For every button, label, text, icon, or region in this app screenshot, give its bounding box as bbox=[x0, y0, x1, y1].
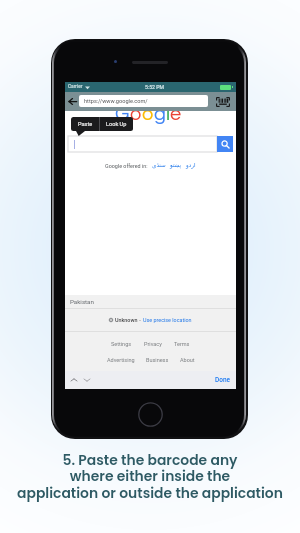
button[interactable]: Business bbox=[146, 357, 169, 363]
button[interactable]: Look Up bbox=[100, 117, 133, 131]
staticText: Look Up bbox=[106, 121, 127, 128]
staticText: g bbox=[154, 104, 166, 125]
staticText: o bbox=[130, 104, 142, 125]
button[interactable]: Home bbox=[138, 402, 163, 427]
button[interactable]: Search bbox=[217, 136, 233, 152]
staticText: https://www.google.com/ bbox=[84, 98, 148, 105]
staticText: G bbox=[115, 104, 130, 125]
staticText: Carrier bbox=[68, 84, 83, 90]
button[interactable]: About bbox=[180, 357, 195, 363]
staticText: Google offered in: bbox=[105, 163, 148, 169]
button[interactable]: Scan barcode bbox=[216, 97, 230, 107]
button[interactable]: Settings bbox=[111, 341, 132, 347]
staticText: o bbox=[142, 104, 154, 125]
staticText: l bbox=[166, 104, 170, 125]
button[interactable]: Paste bbox=[71, 117, 99, 131]
button[interactable]: Use precise location bbox=[143, 317, 192, 323]
button[interactable]: Privacy bbox=[144, 341, 162, 347]
button[interactable]: اردو bbox=[186, 162, 196, 169]
button[interactable]: سنڌي bbox=[152, 162, 166, 169]
button[interactable]: Advertising bbox=[107, 357, 135, 363]
staticText: Unknown bbox=[115, 317, 138, 323]
staticText: 5:52 PM bbox=[145, 84, 165, 90]
staticText: - bbox=[138, 317, 143, 323]
staticText: Paste bbox=[78, 121, 93, 128]
button[interactable]: Done bbox=[215, 376, 231, 384]
button[interactable] bbox=[68, 136, 217, 152]
button[interactable]: Previous field bbox=[70, 376, 78, 384]
button[interactable]: Terms bbox=[174, 341, 190, 347]
button[interactable]: Back bbox=[68, 98, 77, 105]
button[interactable]: Next field bbox=[83, 376, 91, 384]
staticText: e bbox=[170, 104, 181, 125]
staticText: Pakistan bbox=[70, 298, 94, 305]
staticText: 5. Paste the barcode any where either in… bbox=[17, 450, 283, 503]
button[interactable]: پښتو bbox=[170, 162, 182, 169]
button[interactable]: https://www.google.com/ bbox=[84, 95, 208, 107]
staticText: Done bbox=[215, 376, 231, 384]
